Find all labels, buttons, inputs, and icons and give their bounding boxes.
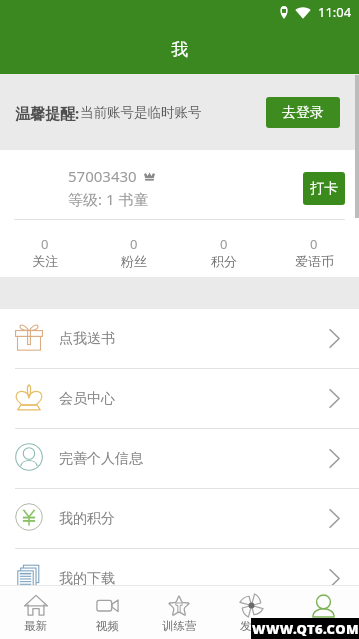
button[interactable]: 0 bbox=[89, 220, 179, 277]
button[interactable]: 打卡 bbox=[303, 172, 345, 205]
staticText: 积分 bbox=[211, 253, 237, 269]
staticText: 0 bbox=[310, 235, 318, 253]
staticText: 粉丝 bbox=[121, 253, 147, 269]
staticText: 温馨提醒: bbox=[15, 103, 80, 123]
staticText: 发现 bbox=[240, 619, 263, 633]
staticText: 我 bbox=[317, 620, 329, 634]
staticText: 最新 bbox=[24, 619, 47, 633]
button[interactable]: 完善个人信息 bbox=[0, 429, 359, 488]
staticText: 0 bbox=[220, 235, 228, 253]
staticText: 0 bbox=[130, 235, 138, 253]
staticText: 我的积分 bbox=[59, 510, 115, 528]
staticText: 点我送书 bbox=[59, 330, 115, 348]
staticText: 57003430 bbox=[68, 166, 137, 186]
staticText: 视频 bbox=[96, 619, 119, 633]
button[interactable]: 发现 bbox=[215, 586, 287, 639]
staticText: 当前账号是临时账号 bbox=[80, 104, 202, 121]
button[interactable]: 0 bbox=[269, 220, 359, 277]
button[interactable]: 0 bbox=[0, 220, 89, 277]
button[interactable]: 点我送书 bbox=[0, 309, 359, 368]
staticText: 我的下载 bbox=[59, 570, 115, 588]
button[interactable]: 去登录 bbox=[266, 97, 340, 128]
staticText: 去登录 bbox=[282, 104, 324, 122]
staticText: 我 bbox=[171, 39, 188, 60]
button[interactable]: 0 bbox=[179, 220, 269, 277]
button[interactable]: 最新 bbox=[0, 586, 71, 639]
button[interactable]: 我的积分 bbox=[0, 489, 359, 548]
staticText: 0 bbox=[41, 235, 49, 253]
staticText: 关注 bbox=[32, 253, 58, 269]
button[interactable]: 我的下载 bbox=[0, 549, 359, 608]
button[interactable]: 训练营 bbox=[143, 586, 215, 639]
button[interactable]: 会员中心 bbox=[0, 369, 359, 428]
staticText: 完善个人信息 bbox=[59, 450, 143, 468]
staticText: 爱语币 bbox=[295, 253, 334, 269]
button[interactable]: 我 bbox=[287, 586, 359, 639]
staticText: 训练营 bbox=[162, 619, 197, 633]
staticText: WWW.QT6.COM bbox=[252, 620, 359, 638]
staticText: 等级: 1 书童 bbox=[68, 189, 149, 209]
button[interactable]: 视频 bbox=[71, 586, 143, 639]
staticText: 11:04 bbox=[318, 3, 352, 21]
staticText: 会员中心 bbox=[59, 390, 115, 408]
staticText: 打卡 bbox=[310, 180, 338, 198]
